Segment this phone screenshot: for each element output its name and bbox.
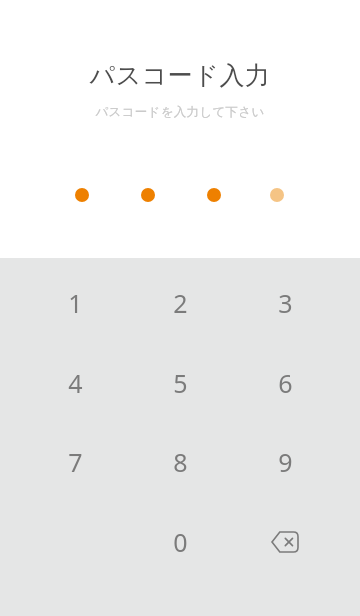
button[interactable]: 1	[25, 266, 125, 340]
staticText: 1	[68, 286, 83, 320]
staticText: 6	[278, 366, 293, 400]
staticText: 7	[68, 445, 83, 479]
button[interactable]: 7	[25, 425, 125, 499]
staticText: パスコード入力	[0, 60, 360, 616]
button[interactable]: Backspace	[235, 505, 335, 579]
staticText: パスコードを入力して下さい	[0, 104, 360, 616]
staticText: 4	[68, 366, 83, 400]
staticText: 8	[173, 445, 188, 479]
staticText: 5	[173, 366, 188, 400]
staticText: 2	[173, 286, 188, 320]
button[interactable]: 0	[130, 505, 230, 579]
button[interactable]: 5	[130, 346, 230, 420]
button[interactable]: 6	[235, 346, 335, 420]
button[interactable]: 2	[130, 266, 230, 340]
button[interactable]: 3	[235, 266, 335, 340]
button[interactable]: 8	[130, 425, 230, 499]
button[interactable]: 9	[235, 425, 335, 499]
staticText: 9	[278, 445, 293, 479]
staticText: 3	[278, 286, 293, 320]
button[interactable]: 4	[25, 346, 125, 420]
staticText: 0	[173, 525, 188, 559]
